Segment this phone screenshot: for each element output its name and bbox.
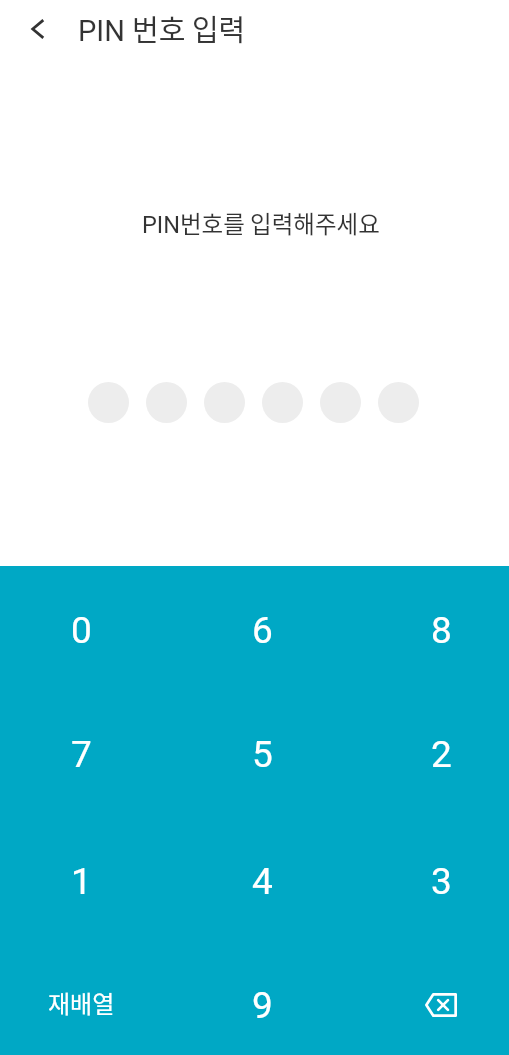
staticText: 9 — [252, 984, 273, 1027]
button[interactable]: 0 — [0, 566, 170, 688]
staticText: 1 — [71, 860, 92, 903]
button[interactable]: 3 — [339, 811, 509, 933]
button[interactable]: 7 — [0, 688, 170, 810]
button[interactable]: 6 — [170, 566, 340, 688]
staticText: 재배열 — [48, 985, 115, 1020]
staticText: 2 — [431, 733, 452, 776]
staticText: 6 — [252, 609, 273, 652]
staticText: 3 — [431, 860, 452, 903]
button[interactable]: 5 — [170, 688, 340, 810]
button[interactable]: 1 — [0, 811, 170, 933]
button[interactable]: 8 — [339, 566, 509, 688]
button[interactable]: Back — [16, 7, 60, 51]
staticText: 4 — [252, 860, 273, 903]
button[interactable]: 2 — [339, 688, 509, 810]
button[interactable]: 재배열 — [0, 933, 170, 1055]
staticText: 8 — [431, 609, 452, 652]
staticText: 7 — [71, 733, 92, 776]
staticText: 5 — [252, 733, 273, 776]
staticText: 0 — [71, 609, 92, 652]
staticText: PIN 번호 입력 — [78, 7, 246, 49]
button[interactable]: Backspace — [339, 933, 509, 1055]
staticText: PIN번호를 입력해주세요 — [142, 206, 380, 240]
button[interactable]: 9 — [170, 933, 340, 1055]
button[interactable]: 4 — [170, 811, 340, 933]
